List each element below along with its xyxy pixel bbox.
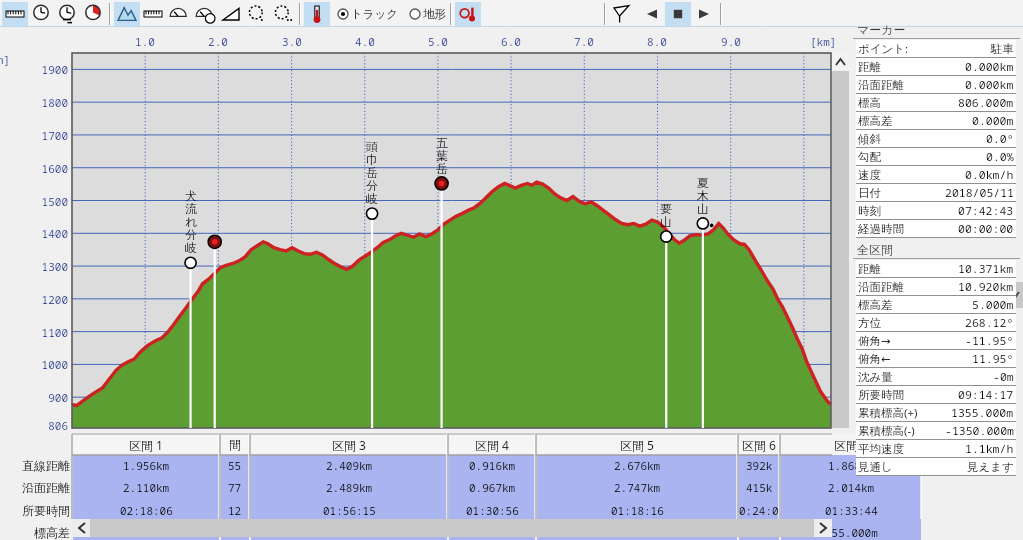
button[interactable]: Area two	[270, 2, 296, 26]
button[interactable]: Scale	[140, 2, 166, 26]
button[interactable]: 3D view	[609, 2, 635, 26]
staticText: 0.000km	[965, 77, 1014, 93]
button[interactable]: 傾斜	[856, 130, 1016, 147]
button[interactable]: 沿面距離	[856, 76, 1016, 93]
staticText: 12	[228, 503, 242, 518]
staticText: 犬	[185, 188, 197, 201]
button[interactable]: 方位	[856, 314, 1016, 331]
staticText: 傾斜	[858, 132, 881, 146]
button[interactable]: 地形	[408, 7, 447, 21]
staticText: 214.000m	[611, 525, 664, 540]
staticText: 木	[697, 188, 709, 201]
staticText: 1.0	[129, 34, 161, 49]
staticText: 全区間	[857, 242, 893, 257]
staticText: 77	[228, 480, 242, 495]
staticText: 2.409km	[326, 458, 373, 473]
button[interactable]: 標高	[856, 94, 1016, 111]
staticText: 標高差	[858, 298, 893, 312]
button[interactable]: 勾配	[856, 148, 1016, 165]
button[interactable]: Mountain profile	[114, 2, 140, 26]
button[interactable]: 2.409km	[251, 455, 447, 540]
button[interactable]: 2.676km	[537, 455, 737, 540]
staticText: 直線距離	[4, 458, 70, 473]
staticText: 7.0	[568, 34, 600, 49]
button[interactable]: 区間 5	[537, 434, 737, 455]
button[interactable]: Speed time	[192, 2, 218, 26]
staticText: 09:14:17	[958, 387, 1014, 403]
button[interactable]: 時刻	[856, 202, 1016, 219]
button[interactable]: 見通し	[856, 458, 1016, 475]
staticText: 駐車	[991, 42, 1014, 56]
button[interactable]: 累積標高(+)	[856, 404, 1016, 421]
button[interactable]: Previous	[639, 2, 665, 26]
button[interactable]: Speed	[166, 2, 192, 26]
button[interactable]: 沿面距離	[856, 278, 1016, 295]
button[interactable]: ポイント:	[856, 40, 1016, 57]
button[interactable]: Thermometer	[304, 2, 330, 26]
button[interactable]: Stop	[665, 2, 691, 26]
button[interactable]: 距離	[856, 58, 1016, 75]
button[interactable]: 俯角←	[856, 350, 1016, 367]
button[interactable]: 累積標高(-)	[856, 422, 1016, 439]
button[interactable]: 速度	[856, 166, 1016, 183]
button[interactable]: 1.956km	[73, 455, 219, 540]
staticText: 1300	[24, 259, 68, 274]
button[interactable]: 392k	[739, 455, 779, 540]
button[interactable]: Pie clock	[80, 2, 106, 26]
button[interactable]: Clock	[28, 2, 54, 26]
button[interactable]: Ruler	[2, 2, 28, 26]
button[interactable]: Clock 123	[54, 2, 80, 26]
button[interactable]: 俯角→	[856, 332, 1016, 349]
button[interactable]: トラック	[336, 7, 400, 21]
staticText: 02:18:06	[120, 503, 173, 518]
button[interactable]: 区間 7	[781, 434, 921, 455]
staticText: 速度	[858, 168, 881, 182]
staticText: 1600	[24, 161, 68, 176]
staticText: 01:18:16	[611, 503, 664, 518]
button[interactable]: 経過時間	[856, 220, 1016, 237]
staticText: 2.0	[202, 34, 234, 49]
button[interactable]: 沈み量	[856, 368, 1016, 385]
staticText: 分	[366, 178, 378, 191]
staticText: 392k	[746, 458, 773, 473]
button[interactable]: 区間 1	[73, 434, 219, 455]
button[interactable]: Next	[691, 2, 717, 26]
button[interactable]: 区間 4	[449, 434, 535, 455]
staticText: 区間 7	[834, 437, 868, 453]
staticText: 区間 5	[620, 437, 654, 453]
staticText: 区間 6	[742, 437, 776, 453]
button[interactable]: 区間 3	[251, 434, 447, 455]
staticText: 86.000m	[469, 525, 516, 540]
button[interactable]: 日付	[856, 184, 1016, 201]
staticText: 方位	[858, 316, 881, 330]
button[interactable]: 55	[221, 455, 249, 540]
staticText: 5.0	[422, 34, 454, 49]
staticText: 見えます	[967, 460, 1014, 474]
button[interactable]: Area one	[244, 2, 270, 26]
staticText: 3.0	[276, 34, 308, 49]
button[interactable]: 標高差	[856, 112, 1016, 129]
staticText: 1.1km/h	[965, 441, 1014, 457]
staticText: 勾配	[858, 150, 881, 164]
staticText: 0.000m	[972, 113, 1014, 129]
staticText: 標高	[858, 96, 881, 110]
staticText: 岐	[185, 240, 197, 253]
staticText: 見通し	[858, 460, 893, 474]
button[interactable]: 0.916km	[449, 455, 535, 540]
staticText: 累積標高(+)	[858, 405, 918, 421]
button[interactable]: Marker	[455, 2, 481, 26]
staticText: 岐	[366, 191, 378, 204]
button[interactable]: 1.868km	[781, 455, 921, 540]
staticText: 距離	[858, 60, 881, 74]
staticText: 夏	[697, 175, 709, 188]
button[interactable]: 距離	[856, 260, 1016, 277]
staticText: 沿面距離	[858, 280, 904, 294]
staticText: 1355.000m	[951, 405, 1014, 421]
button[interactable]: 標高差	[856, 296, 1016, 313]
button[interactable]: Slope	[218, 2, 244, 26]
button[interactable]: 間	[221, 434, 249, 455]
button[interactable]: 平均速度	[856, 440, 1016, 457]
button[interactable]: 区間 6	[739, 434, 779, 455]
staticText: 分	[185, 227, 197, 240]
button[interactable]: 所要時間	[856, 386, 1016, 403]
